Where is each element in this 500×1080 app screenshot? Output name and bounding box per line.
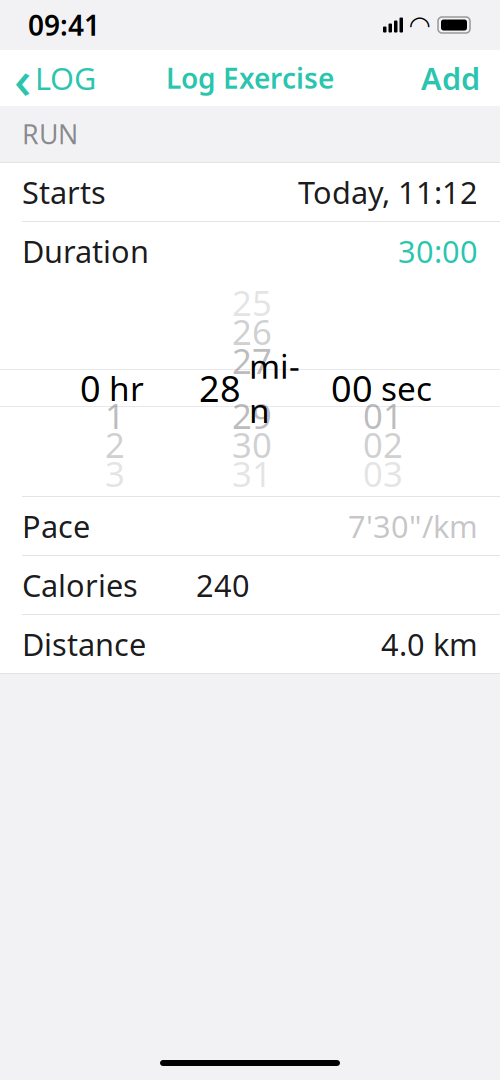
button[interactable]: Starts — [0, 163, 500, 221]
staticText: 240 — [196, 565, 250, 605]
staticText: 4.0 km — [381, 624, 478, 664]
staticText: Log Exercise — [166, 59, 334, 97]
button[interactable]: Add — [401, 54, 500, 102]
staticText: ‹ — [14, 43, 31, 113]
button[interactable]: Calories — [0, 556, 500, 614]
staticText: 03 — [363, 450, 403, 496]
staticText: 30 — [232, 421, 272, 467]
staticText: 09:41 — [28, 6, 100, 44]
staticText: Today, 11:12 — [298, 172, 478, 212]
staticText: ◠ — [410, 11, 429, 39]
staticText: 28 — [199, 364, 241, 412]
staticText: 3 — [105, 450, 125, 496]
staticText: 00 — [331, 364, 373, 412]
staticText: 25 — [232, 279, 272, 325]
staticText: 01 — [363, 392, 403, 438]
staticText: Pace — [22, 506, 90, 546]
button[interactable]: ‹ — [0, 54, 110, 102]
staticText: 7'30"/km — [348, 506, 478, 546]
button[interactable]: Pace — [0, 497, 500, 555]
staticText: Distance — [22, 624, 146, 664]
staticText: 30:00 — [398, 231, 478, 271]
staticText: 0 — [80, 364, 101, 412]
staticText: RUN — [22, 116, 78, 152]
staticText: 1 — [105, 392, 125, 438]
staticText: 2 — [105, 421, 125, 467]
button[interactable]: Duration — [0, 222, 500, 280]
staticText: Add — [421, 58, 480, 98]
staticText: 02 — [363, 421, 403, 467]
staticText: sec — [381, 366, 432, 410]
staticText: Duration — [22, 231, 149, 271]
staticText: LOG — [35, 58, 96, 98]
staticText: Calories — [22, 565, 138, 605]
button[interactable]: Distance — [0, 615, 500, 673]
staticText: hr — [109, 366, 144, 410]
staticText: Starts — [22, 172, 106, 212]
staticText: 26 — [232, 308, 272, 354]
staticText: 29 — [232, 392, 272, 438]
staticText: 27 — [232, 337, 272, 383]
staticText: 31 — [232, 450, 272, 496]
staticText: min — [249, 344, 300, 432]
